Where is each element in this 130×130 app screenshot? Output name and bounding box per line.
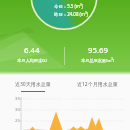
staticText: 95.69 bbox=[88, 45, 108, 56]
button[interactable]: 近12个月用水总量 bbox=[65, 81, 130, 91]
staticText: 近30天用水总量 bbox=[15, 81, 51, 88]
staticText: 昨日：24.08 (m³) bbox=[54, 11, 88, 17]
staticText: 30 bbox=[15, 107, 20, 113]
button[interactable]: 6.44 bbox=[0, 45, 64, 64]
staticText: 近12个月用水总量 bbox=[77, 81, 118, 88]
staticText: 本月人均用水(L) bbox=[17, 58, 47, 64]
button[interactable]: 95.69 bbox=[65, 45, 130, 64]
staticText: 25 bbox=[15, 118, 20, 124]
staticText: 6.44 bbox=[24, 45, 40, 56]
button[interactable]: 近30天用水总量 bbox=[0, 81, 65, 92]
staticText: 今日：5.5 (m³) bbox=[54, 3, 83, 9]
staticText: 本月总用水量(m³) bbox=[81, 58, 115, 64]
staticText: 35 bbox=[15, 96, 20, 102]
